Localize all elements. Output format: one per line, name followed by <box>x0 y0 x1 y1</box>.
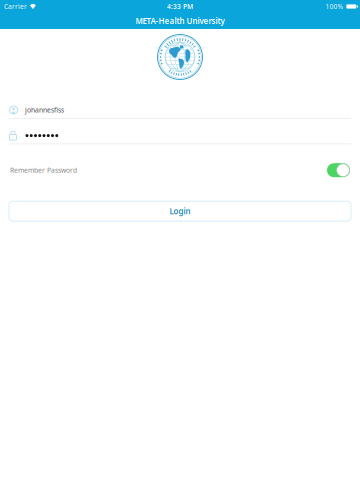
staticText: META-Health University <box>135 16 224 26</box>
button[interactable]: Login <box>0 201 360 221</box>
staticText: Carrier <box>4 2 27 11</box>
button[interactable] <box>0 128 360 144</box>
staticText: 4:33 PM <box>167 2 193 11</box>
button[interactable]: Remember Password <box>0 160 360 180</box>
button[interactable]: johannesfiss <box>0 102 360 119</box>
staticText: Remember Password <box>10 166 77 175</box>
staticText: Login <box>169 206 190 216</box>
staticText: johannesfiss <box>25 106 64 114</box>
staticText: 100% <box>325 2 343 11</box>
